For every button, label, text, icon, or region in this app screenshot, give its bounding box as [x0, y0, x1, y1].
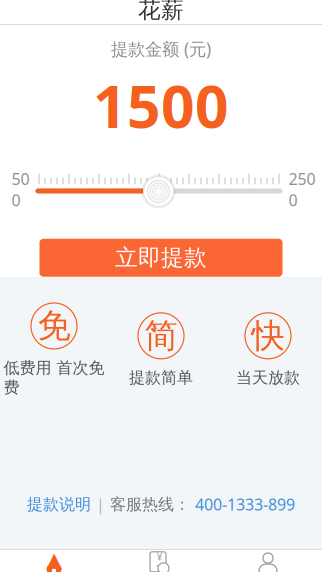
staticText: 客服热线：	[110, 494, 190, 514]
button[interactable]: ¥	[107, 550, 214, 572]
staticText: 2500	[288, 168, 315, 211]
staticText: 免	[37, 305, 70, 346]
button[interactable]: 提款说明	[27, 494, 91, 514]
button[interactable]: 立即提款	[39, 239, 282, 277]
staticText: |	[96, 494, 105, 515]
button[interactable]: 我的	[214, 550, 321, 572]
staticText: 简	[144, 315, 177, 356]
staticText: ▲	[46, 548, 62, 572]
staticText: 快	[251, 315, 284, 356]
staticText: 提款金额 (元)	[111, 37, 211, 60]
staticText: 提款说明	[27, 494, 91, 514]
staticText: 1500	[93, 66, 229, 144]
staticText: 当天放款	[236, 368, 300, 387]
staticText: 花薪	[138, 0, 184, 24]
staticText: 500	[11, 168, 29, 211]
staticText: 提款简单	[129, 368, 193, 387]
button[interactable]: 400-1333-899	[195, 494, 295, 515]
staticText: 400-1333-899	[195, 494, 295, 515]
staticText: 低费用 首次免费	[3, 358, 104, 397]
staticText: 立即提款	[115, 244, 207, 272]
staticText: ¥	[156, 549, 162, 563]
button[interactable]: ▲	[0, 550, 107, 572]
